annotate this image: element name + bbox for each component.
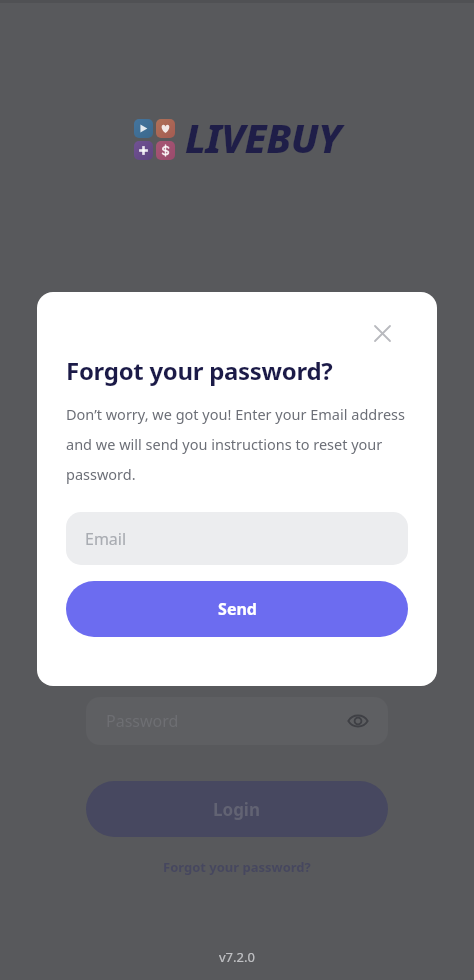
staticText: Send — [218, 598, 257, 620]
button[interactable]: Send — [66, 581, 408, 637]
button[interactable]: Login — [86, 781, 388, 837]
button[interactable]: Close — [365, 316, 399, 350]
button[interactable]: Email — [66, 512, 408, 565]
button[interactable]: Password — [86, 697, 388, 745]
staticText: LIVEBUY — [185, 110, 341, 164]
staticText: Forgot your password? — [163, 858, 311, 876]
staticText: Don’t worry, we got you! Enter your Emai… — [66, 404, 408, 484]
staticText: Email — [85, 528, 127, 550]
staticText: Forgot your password? — [66, 354, 333, 387]
staticText: v7.2.0 — [219, 948, 255, 966]
staticText: Login — [213, 798, 261, 821]
staticText: Password — [106, 710, 179, 732]
button[interactable]: Forgot your password? — [157, 856, 317, 878]
button[interactable]: Show password — [342, 705, 374, 737]
